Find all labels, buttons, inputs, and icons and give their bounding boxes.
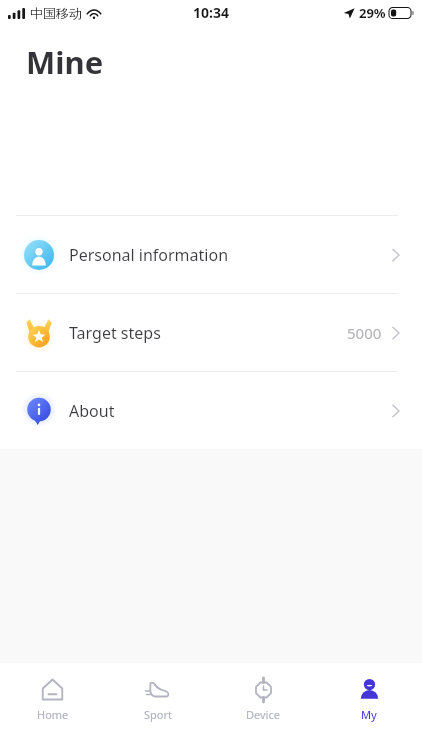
staticText: Target steps xyxy=(69,322,161,344)
staticText: My xyxy=(361,707,377,722)
staticText: Mine xyxy=(26,41,104,83)
button[interactable]: My xyxy=(316,663,422,722)
button[interactable]: Device xyxy=(210,663,316,722)
staticText: Personal information xyxy=(69,244,229,266)
button[interactable]: Personal information xyxy=(0,216,422,293)
staticText: Sport xyxy=(144,707,172,722)
staticText: 10:34 xyxy=(193,3,229,22)
staticText: 中国移动 xyxy=(30,5,82,21)
staticText: Device xyxy=(246,707,280,722)
button[interactable]: Sport xyxy=(105,663,210,722)
staticText: 29% xyxy=(359,4,386,22)
button[interactable]: About xyxy=(0,372,422,449)
button[interactable]: Target steps xyxy=(0,294,422,371)
staticText: 5000 xyxy=(347,323,382,343)
staticText: Home xyxy=(37,707,69,722)
button[interactable]: Home xyxy=(0,663,105,722)
staticText: About xyxy=(69,400,115,422)
